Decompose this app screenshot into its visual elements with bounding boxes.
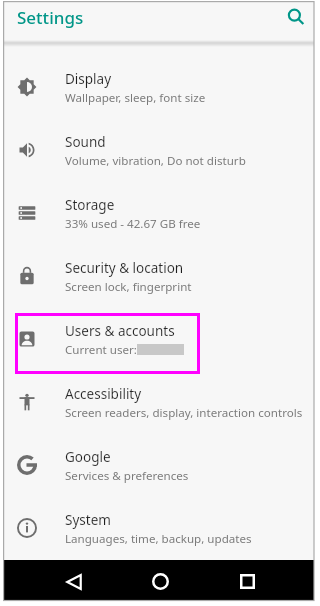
button[interactable]: Accessibility	[0, 373, 320, 436]
staticText: Sound	[65, 133, 106, 151]
staticText: Display	[65, 70, 112, 88]
button[interactable]: Storage	[0, 184, 320, 247]
staticText: Google	[65, 448, 111, 466]
staticText: System	[65, 511, 111, 529]
button[interactable]: Recents	[226, 561, 269, 602]
button[interactable]: Sound	[0, 121, 320, 184]
staticText: Screen readers, display, interaction con…	[65, 405, 303, 421]
button[interactable]: Search	[280, 1, 312, 33]
button[interactable]: Users & accounts	[0, 310, 320, 373]
button[interactable]: Home	[139, 561, 182, 602]
staticText: Security & location	[65, 259, 184, 277]
staticText: Current user:	[65, 342, 137, 358]
staticText: Users & accounts	[65, 322, 175, 340]
button[interactable]: Back	[52, 561, 95, 602]
button[interactable]: Google	[0, 436, 320, 499]
button[interactable]: Display	[0, 58, 320, 121]
staticText: Volume, vibration, Do not disturb	[65, 153, 246, 169]
staticText: Screen lock, fingerprint	[65, 279, 192, 295]
staticText: 33% used - 42.67 GB free	[65, 216, 201, 232]
staticText: Wallpaper, sleep, font size	[65, 90, 206, 106]
button[interactable]: System	[0, 499, 320, 562]
staticText: Services & preferences	[65, 468, 189, 484]
staticText: Settings	[17, 6, 84, 29]
staticText: Accessibility	[65, 385, 142, 403]
staticText: Storage	[65, 196, 115, 214]
button[interactable]: Security & location	[0, 247, 320, 310]
staticText: Languages, time, backup, updates	[65, 531, 252, 547]
